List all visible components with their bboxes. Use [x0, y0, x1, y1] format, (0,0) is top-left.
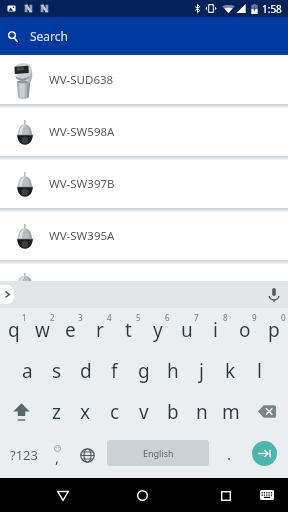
staticText: . — [227, 444, 232, 464]
button[interactable]: 0 — [259, 309, 288, 350]
staticText: 6 — [165, 312, 170, 323]
button[interactable]: j — [187, 350, 216, 391]
button[interactable]: l — [245, 350, 274, 391]
staticText: a — [22, 358, 33, 384]
staticText: l — [257, 358, 262, 384]
staticText: j — [199, 358, 204, 384]
button[interactable]: 3 — [56, 309, 85, 350]
button[interactable]: 8 — [201, 309, 230, 350]
button[interactable]: ?123 — [0, 432, 47, 478]
button[interactable]: WV-SW397B — [0, 160, 288, 208]
staticText: x — [80, 399, 91, 425]
button[interactable]: Search — [0, 17, 288, 55]
button[interactable]: b — [158, 391, 187, 432]
button[interactable]: Expand suggestions — [0, 285, 14, 304]
button[interactable]: m — [216, 391, 245, 432]
staticText: n — [196, 399, 208, 425]
staticText: t — [125, 317, 132, 343]
staticText: 1 — [22, 312, 27, 323]
button[interactable]: 5 — [114, 309, 143, 350]
button[interactable]: f — [100, 350, 129, 391]
button[interactable]: s — [42, 350, 71, 391]
staticText: 7 — [194, 312, 199, 323]
staticText: 3 — [78, 312, 83, 323]
button[interactable]: 9 — [230, 309, 259, 350]
staticText: WV-SUD638 — [49, 72, 114, 88]
staticText: , — [55, 447, 60, 467]
staticText: p — [268, 317, 280, 343]
button[interactable]: h — [158, 350, 187, 391]
staticText: m — [222, 399, 240, 425]
button[interactable]: Backspace — [245, 391, 288, 432]
staticText: v — [139, 399, 149, 425]
button[interactable]: WV-SUD638 — [0, 55, 288, 104]
staticText: d — [80, 358, 92, 384]
button[interactable]: v — [129, 391, 158, 432]
staticText: Search — [30, 28, 68, 44]
button[interactable]: Enter — [252, 441, 277, 466]
button[interactable]: WV-SW395A — [0, 212, 288, 260]
button[interactable]: Recents — [209, 479, 242, 512]
staticText: w — [35, 317, 50, 343]
button[interactable]: d — [71, 350, 100, 391]
button[interactable]: Comma and emoji — [44, 432, 70, 478]
button[interactable]: Back — [46, 479, 79, 512]
staticText: WV-SW395A — [49, 228, 115, 244]
staticText: 2 — [50, 312, 55, 323]
button[interactable]: k — [216, 350, 245, 391]
staticText: 1:58 — [262, 2, 282, 16]
staticText: ?123 — [10, 446, 38, 464]
staticText: o — [239, 317, 251, 343]
staticText: u — [181, 317, 193, 343]
staticText: b — [167, 399, 179, 425]
button[interactable]: 7 — [172, 309, 201, 350]
button[interactable]: a — [13, 350, 42, 391]
staticText: c — [110, 399, 120, 425]
staticText: g — [138, 358, 150, 384]
staticText: WV-SW598A — [49, 124, 115, 140]
button[interactable]: g — [129, 350, 158, 391]
staticText: h — [167, 358, 179, 384]
staticText: z — [52, 399, 61, 425]
button[interactable]: 6 — [143, 309, 172, 350]
staticText: q — [8, 317, 20, 343]
button[interactable]: WV-SW598A — [0, 108, 288, 156]
button[interactable]: c — [100, 391, 129, 432]
button[interactable]: Change language — [74, 432, 100, 478]
staticText: r — [96, 317, 104, 343]
button[interactable]: Home — [126, 479, 159, 512]
staticText: 0 — [281, 312, 286, 323]
staticText: 8 — [223, 312, 228, 323]
button[interactable]: Shift — [0, 391, 42, 432]
staticText: English — [143, 447, 174, 459]
staticText: e — [65, 317, 76, 343]
staticText: 5 — [136, 312, 141, 323]
staticText: 9 — [252, 312, 257, 323]
staticText: f — [111, 358, 118, 384]
button[interactable]: . — [216, 432, 242, 478]
staticText: s — [52, 358, 62, 384]
button[interactable]: English — [107, 440, 209, 466]
button[interactable]: Change keyboard — [255, 483, 279, 507]
button[interactable]: Voice input — [263, 281, 284, 308]
button[interactable]: x — [71, 391, 100, 432]
button[interactable]: n — [187, 391, 216, 432]
staticText: WV-SW397B — [49, 176, 115, 192]
button[interactable]: z — [42, 391, 71, 432]
staticText: k — [225, 358, 236, 384]
staticText: i — [213, 317, 218, 343]
button[interactable]: 2 — [28, 309, 56, 350]
staticText: y — [153, 317, 163, 343]
button[interactable]: 1 — [0, 309, 28, 350]
button[interactable]: 4 — [85, 309, 114, 350]
staticText: 4 — [107, 312, 112, 323]
